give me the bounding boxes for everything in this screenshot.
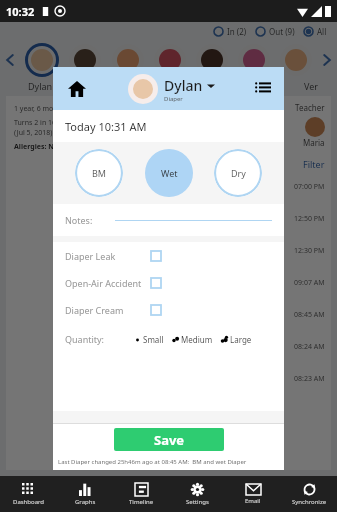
button[interactable]: Open-Air Accident [65,269,284,296]
staticText: Feed [72,223,91,234]
staticText: Save [154,431,185,449]
staticText: 1 year, 6 months old [14,104,81,114]
staticText: BM [92,167,107,179]
staticText: Allergies: None [14,142,68,152]
button[interactable]: Timeline [113,476,169,512]
staticText: In (2) [227,26,247,37]
staticText: Ver [304,80,319,92]
button[interactable]: Save [114,428,224,451]
staticText: Diaper Cream [65,304,124,316]
staticText: (Jul 5, 2018) [14,128,53,138]
button[interactable]: Diaper Leak [65,242,284,269]
staticText: Diaper [164,95,183,103]
staticText: Teacher [295,102,325,113]
staticText: 10:32 [6,4,35,19]
staticText: Settings [186,498,209,506]
staticText: Wet [161,167,178,179]
staticText: 25h24 [69,186,93,197]
staticText: Graphs [75,498,96,506]
button[interactable]: Dry [214,149,262,197]
staticText: Dylan [28,80,53,92]
button[interactable]: Dylan [128,74,215,104]
button[interactable]: Medium [171,334,213,345]
staticText: Last Diaper changed 25h46m ago at 08:45 … [58,458,247,466]
staticText: Turns 2 in 16 months [14,118,84,128]
staticText: Small [143,334,164,345]
staticText: Open-Air Accident [65,277,142,289]
staticText: 4m ago [66,240,96,251]
staticText: Assessments [57,406,106,417]
staticText: 08:24 AM [294,342,325,352]
staticText: All [317,26,327,37]
staticText: 12:50 PM [294,214,325,224]
staticText: 07:00 PM [294,182,325,192]
button[interactable]: Dashboard [0,476,57,512]
button[interactable]: Diaper Cream [65,296,284,323]
button[interactable]: Graphs [57,476,113,512]
staticText: Dylan [164,76,203,95]
staticText: Synchronize [292,498,327,506]
staticText: Dry [231,167,246,179]
staticText: 09:07 AM [294,278,325,288]
staticText: Filter [303,158,325,170]
button[interactable]: Settings [169,476,225,512]
staticText: Large [230,334,252,345]
staticText: Maria [303,137,325,148]
staticText: Today 10:31 AM [65,119,147,134]
button[interactable]: Menu [242,67,284,110]
staticText: Email [245,497,261,505]
staticText: Quantity: [65,333,105,345]
staticText: Timeline [129,498,154,506]
button[interactable]: Home [53,67,101,110]
staticText: Notes: [65,214,93,226]
staticText: 08:23 AM [294,374,325,384]
staticText: Actions [67,166,95,177]
button[interactable]: Notes: [65,204,272,236]
button[interactable]: Wet [145,149,193,197]
button[interactable]: Small [133,334,164,345]
staticText: Dashboard [13,498,45,506]
staticText: Sleep [71,277,92,288]
button[interactable]: Large [220,334,252,345]
staticText: 12:30 PM [294,246,325,256]
button[interactable]: Email [225,476,281,512]
staticText: Out (9) [269,26,295,37]
staticText: 08:45 AM [294,310,325,320]
staticText: Medium [181,334,213,345]
button[interactable]: Synchronize [281,476,337,512]
button[interactable]: BM [75,149,123,197]
staticText: Diaper Leak [65,250,116,262]
